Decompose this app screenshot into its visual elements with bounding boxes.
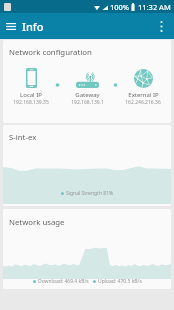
button[interactable]: More options <box>148 13 174 39</box>
button[interactable]: Gateway <box>59 67 115 106</box>
staticText: External IP <box>128 91 159 99</box>
staticText: Network configuration <box>9 47 92 58</box>
button[interactable]: Open navigation drawer <box>0 13 21 39</box>
staticText: Download: 469.4 kB/s <box>38 278 89 285</box>
staticText: Gateway <box>75 91 100 99</box>
staticText: 11:32 AM <box>138 2 171 12</box>
staticText: Local IP <box>20 91 42 99</box>
button[interactable]: External IP <box>115 67 171 106</box>
button[interactable]: Local IP <box>3 67 59 106</box>
staticText: Network usage <box>9 217 65 228</box>
staticText: 192.168.139.1 <box>71 99 104 106</box>
staticText: Info <box>22 19 44 34</box>
staticText: S-int-ex <box>9 132 37 143</box>
staticText: 192.168.139.35 <box>13 99 49 106</box>
staticText: Signal Strength 81% <box>66 190 114 197</box>
staticText: Upload: 470.5 kB/s <box>98 278 142 285</box>
staticText: 162.246.216.36 <box>125 99 161 106</box>
staticText: 100% <box>110 2 130 12</box>
